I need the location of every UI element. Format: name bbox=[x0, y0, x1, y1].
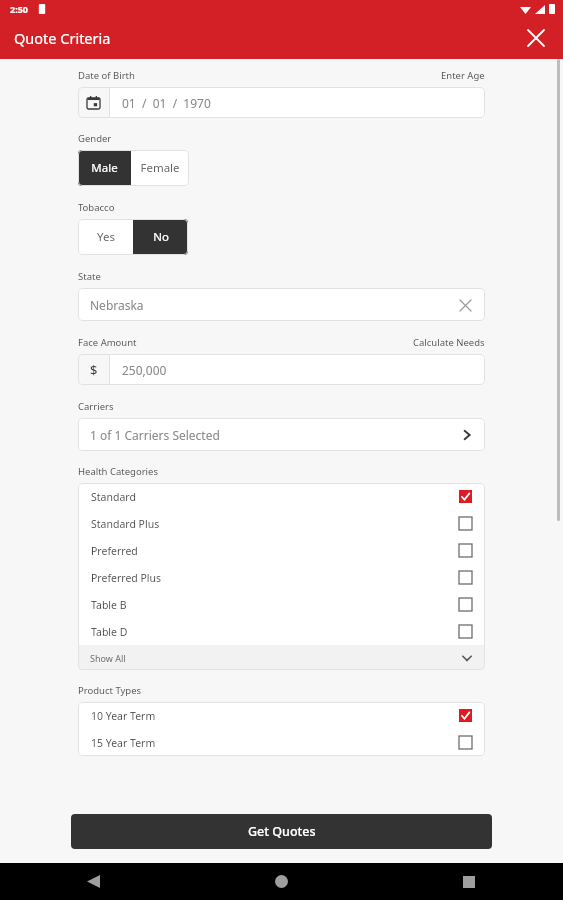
button[interactable]: Preferred Plus bbox=[78, 564, 485, 591]
staticText: Carriers bbox=[78, 400, 114, 413]
staticText: Date of Birth bbox=[78, 69, 135, 82]
button[interactable]: Table B bbox=[78, 591, 485, 618]
staticText: Nebraska bbox=[90, 297, 144, 313]
button[interactable]: Preferred bbox=[78, 537, 485, 564]
staticText: Yes bbox=[97, 229, 115, 245]
staticText: Female bbox=[140, 160, 180, 176]
staticText: Gender bbox=[78, 132, 112, 145]
staticText: Preferred Plus bbox=[91, 571, 162, 585]
button[interactable]: No bbox=[133, 219, 188, 255]
button[interactable]: 15 Year Term bbox=[78, 729, 485, 756]
button[interactable]: Standard Plus bbox=[78, 510, 485, 537]
staticText: Preferred bbox=[91, 544, 138, 558]
staticText: Product Types bbox=[78, 684, 142, 697]
button[interactable]: Get Quotes bbox=[71, 814, 492, 849]
button[interactable]: Table D bbox=[78, 618, 485, 645]
button[interactable]: $ bbox=[78, 354, 485, 385]
staticText: Tobacco bbox=[78, 201, 115, 214]
staticText: Table B bbox=[91, 598, 127, 612]
staticText: Male bbox=[91, 160, 118, 176]
staticText: 01 / 01 / 1970 bbox=[122, 95, 211, 111]
staticText: State bbox=[78, 270, 101, 283]
button[interactable]: Male bbox=[78, 150, 131, 186]
button[interactable]: Close bbox=[517, 19, 555, 57]
staticText: Face Amount bbox=[78, 336, 137, 349]
staticText: Enter Age bbox=[441, 69, 485, 82]
button[interactable]: Clear state bbox=[455, 295, 475, 315]
button[interactable]: Standard bbox=[78, 483, 485, 510]
staticText: No bbox=[153, 229, 169, 245]
button[interactable]: 1 of 1 Carriers Selected bbox=[78, 418, 485, 451]
button[interactable]: Nebraska bbox=[78, 288, 485, 321]
staticText: Show All bbox=[90, 652, 126, 664]
staticText: 250,000 bbox=[122, 362, 167, 378]
button[interactable]: 10 Year Term bbox=[78, 702, 485, 729]
button[interactable]: 01 / 01 / 1970 bbox=[78, 87, 485, 118]
staticText: 15 Year Term bbox=[91, 736, 156, 750]
button[interactable]: Show All bbox=[78, 645, 485, 670]
staticText: 2:50 bbox=[10, 3, 28, 15]
staticText: 1 of 1 Carriers Selected bbox=[90, 427, 220, 443]
button[interactable]: Home bbox=[187, 863, 375, 900]
button[interactable]: Enter Age bbox=[441, 69, 485, 82]
staticText: Standard Plus bbox=[91, 517, 160, 531]
button[interactable]: Yes bbox=[78, 219, 133, 255]
staticText: Calculate Needs bbox=[413, 336, 485, 349]
staticText: Health Categories bbox=[78, 465, 158, 478]
staticText: Quote Criteria bbox=[14, 28, 111, 48]
staticText: Get Quotes bbox=[248, 823, 316, 840]
staticText: $ bbox=[90, 361, 98, 379]
staticText: Standard bbox=[91, 490, 136, 504]
button[interactable]: Recent apps bbox=[375, 863, 563, 900]
button[interactable]: Calculate Needs bbox=[413, 336, 485, 349]
staticText: Table D bbox=[91, 625, 128, 639]
button[interactable]: Female bbox=[131, 150, 189, 186]
button[interactable]: Back bbox=[0, 863, 187, 900]
staticText: 10 Year Term bbox=[91, 709, 156, 723]
